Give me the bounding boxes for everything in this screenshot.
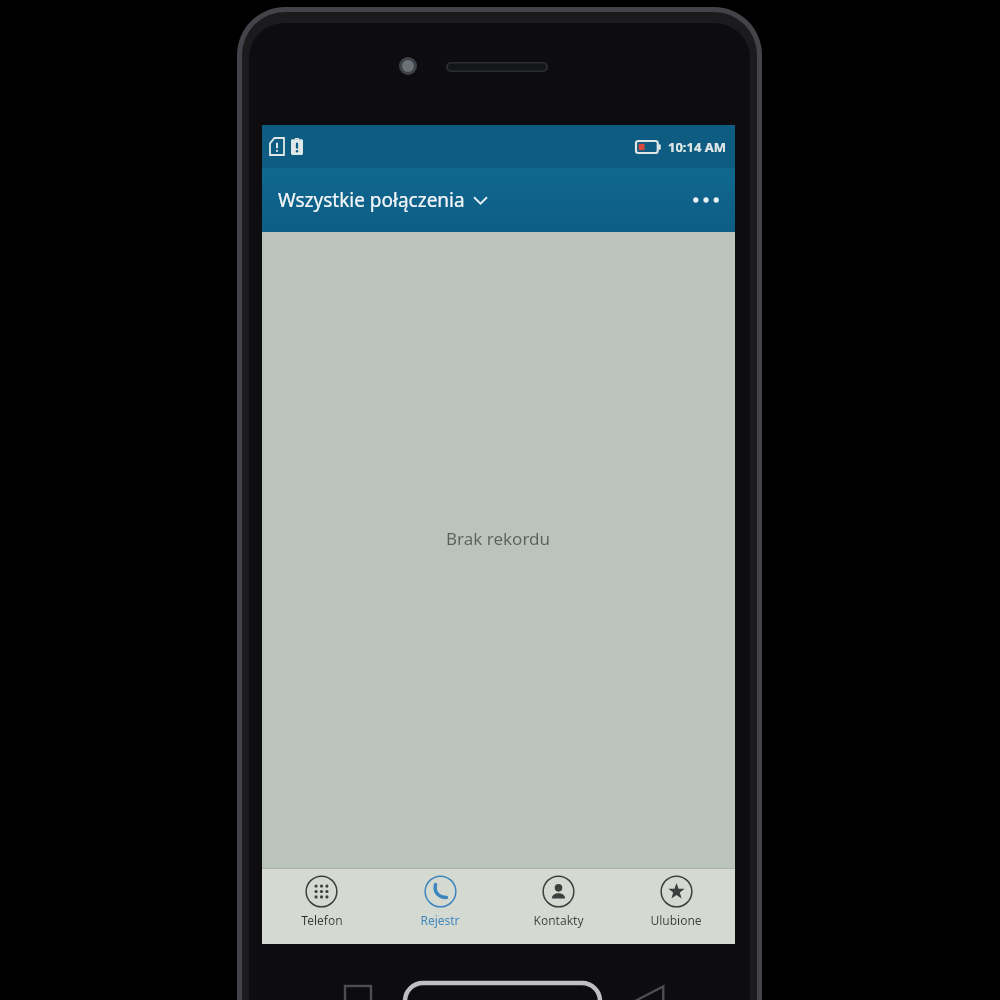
button[interactable]: Ulubione [617,868,735,944]
button[interactable]: Rejestr [381,868,499,944]
button[interactable]: Kontakty [499,868,617,944]
button[interactable]: Wszystkie połączenia [276,181,489,219]
staticText: Telefon [301,912,343,928]
staticText: Kontakty [533,912,584,928]
staticText: Ulubione [650,912,702,928]
staticText: Rejestr [420,912,460,928]
staticText: Brak rekordu [446,527,551,550]
staticText: Wszystkie połączenia [278,187,465,213]
button[interactable]: Telefon [262,868,381,944]
button[interactable]: More options [677,168,735,232]
staticText: 10:14 AM [668,138,727,156]
